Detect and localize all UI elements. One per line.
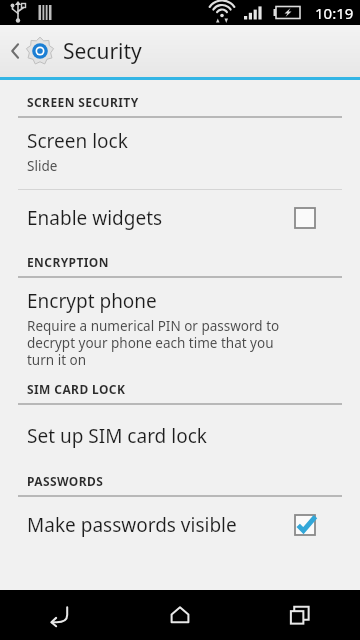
button[interactable]: Recent apps: [240, 590, 360, 640]
staticText: Slide: [27, 157, 58, 175]
staticText: SIM CARD LOCK: [27, 381, 126, 397]
staticText: Make passwords visible: [27, 512, 294, 538]
staticText: ENCRYPTION: [27, 254, 109, 270]
button[interactable]: Encrypt phone: [0, 278, 360, 375]
staticText: Require a numerical PIN or password to d…: [27, 317, 280, 369]
staticText: Security: [63, 37, 142, 66]
button[interactable]: Screen lock: [0, 118, 360, 189]
button[interactable]: Navigate up: [0, 25, 360, 77]
staticText: Set up SIM card lock: [27, 423, 207, 449]
button[interactable]: Home: [120, 590, 240, 640]
staticText: 10:19: [315, 3, 354, 23]
staticText: PASSWORDS: [27, 473, 104, 489]
staticText: Screen lock: [27, 128, 128, 154]
button[interactable]: Make passwords visible: [0, 497, 360, 553]
button[interactable]: Set up SIM card lock: [0, 405, 360, 471]
staticText: Encrypt phone: [27, 288, 157, 314]
staticText: SCREEN SECURITY: [27, 94, 139, 110]
staticText: Enable widgets: [27, 205, 294, 231]
button[interactable]: Back: [0, 590, 120, 640]
button[interactable]: Enable widgets: [0, 190, 360, 246]
